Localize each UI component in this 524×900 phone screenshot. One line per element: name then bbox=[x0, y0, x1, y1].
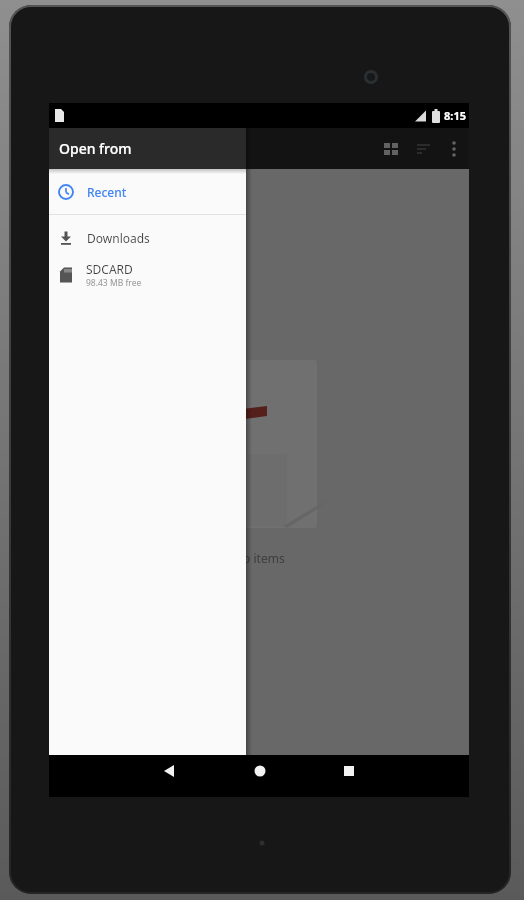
button[interactable] bbox=[407, 133, 439, 165]
button[interactable] bbox=[153, 755, 185, 787]
button[interactable]: Recent bbox=[49, 169, 246, 214]
staticText: 8:15 bbox=[444, 108, 466, 123]
button[interactable] bbox=[244, 755, 276, 787]
button[interactable] bbox=[439, 134, 469, 164]
staticText: Downloads bbox=[87, 230, 150, 246]
staticText: 98.43 MB free bbox=[86, 277, 142, 289]
button[interactable]: SDCARD bbox=[49, 260, 246, 290]
button[interactable] bbox=[333, 755, 365, 787]
staticText: Recent bbox=[87, 184, 127, 200]
staticText: SDCARD bbox=[86, 261, 133, 277]
button[interactable]: Downloads bbox=[49, 215, 246, 260]
staticText: No items bbox=[234, 550, 285, 566]
button[interactable] bbox=[375, 133, 407, 165]
staticText: Open from bbox=[59, 139, 132, 158]
